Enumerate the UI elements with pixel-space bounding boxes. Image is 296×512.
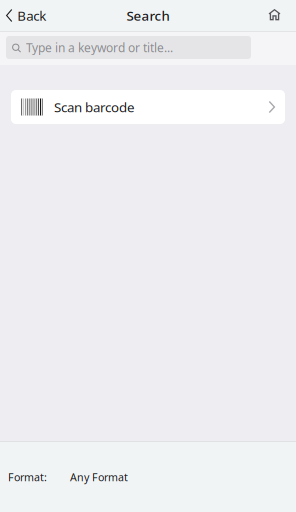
staticText: Format: bbox=[8, 470, 47, 484]
button[interactable]: Any Format bbox=[47, 464, 136, 490]
staticText: Type in a keyword or title... bbox=[26, 39, 173, 55]
button[interactable]: Back bbox=[0, 0, 56, 31]
staticText: Back bbox=[17, 7, 46, 24]
staticText: Any Format bbox=[70, 470, 128, 484]
button[interactable]: Type in a keyword or title... bbox=[6, 36, 251, 59]
button[interactable]: Home bbox=[260, 1, 289, 30]
staticText: Scan barcode bbox=[54, 98, 135, 116]
button[interactable]: Scan barcode bbox=[11, 90, 285, 124]
staticText: Search bbox=[126, 7, 169, 24]
